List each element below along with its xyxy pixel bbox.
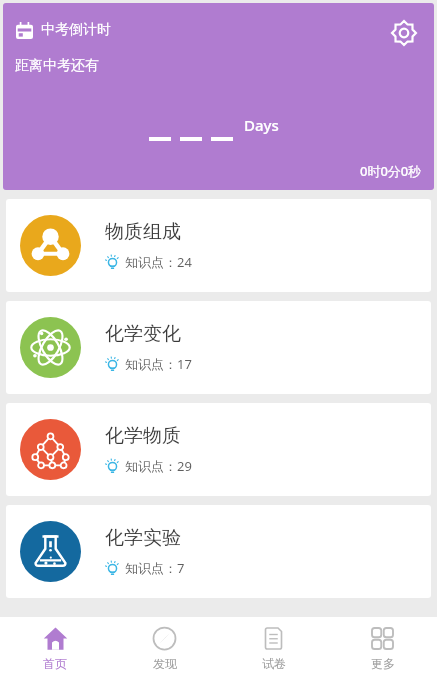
staticText: 化学变化 (105, 322, 181, 346)
button[interactable]: 化学实验 (6, 505, 431, 598)
button[interactable]: Settings (386, 15, 422, 51)
button[interactable]: 首页 (0, 617, 110, 679)
button[interactable]: 发现 (110, 617, 219, 679)
staticText: 物质组成 (105, 220, 181, 244)
staticText: Days (244, 115, 279, 135)
button[interactable]: 物质组成 (6, 199, 431, 292)
staticText: 距离中考还有 (15, 57, 99, 75)
staticText: 试卷 (262, 656, 286, 671)
button[interactable]: 试卷 (219, 617, 328, 679)
button[interactable]: 化学变化 (6, 301, 431, 394)
button[interactable]: 化学物质 (6, 403, 431, 496)
staticText: 知识点：17 (125, 355, 192, 373)
staticText: 发现 (153, 656, 177, 671)
button[interactable]: 更多 (328, 617, 437, 679)
staticText: 首页 (43, 656, 67, 671)
staticText: 知识点：29 (125, 457, 192, 475)
staticText: 0时0分0秒 (360, 162, 422, 180)
staticText: 知识点：7 (125, 559, 185, 577)
staticText: 更多 (371, 656, 395, 671)
staticText: 化学实验 (105, 526, 181, 550)
staticText: 化学物质 (105, 424, 181, 448)
staticText: 知识点：24 (125, 253, 192, 271)
button[interactable]: 中考倒计时 (3, 3, 434, 190)
staticText: 中考倒计时 (41, 21, 111, 39)
